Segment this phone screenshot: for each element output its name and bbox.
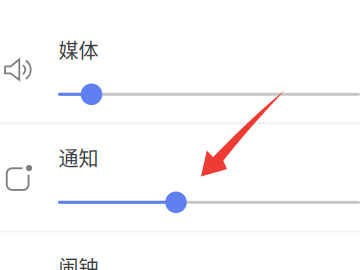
staticText: 媒体 (59, 35, 99, 64)
staticText: 闹钟 (59, 252, 99, 270)
staticText: 通知 (59, 143, 99, 172)
button[interactable]: 通知 (0, 144, 360, 230)
button[interactable]: 闹钟 (0, 258, 360, 270)
button[interactable]: 媒体 (0, 36, 360, 122)
